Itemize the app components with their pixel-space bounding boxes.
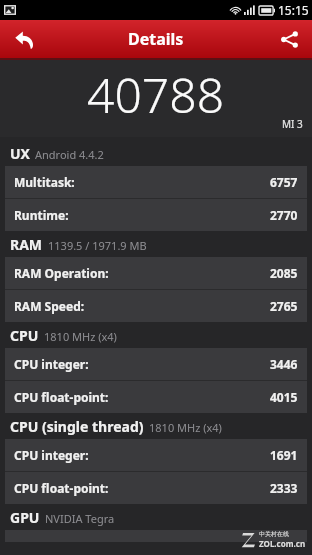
staticText: MI 3 bbox=[282, 117, 303, 131]
staticText: 6757 bbox=[270, 174, 298, 190]
staticText: ZOL.com.cn bbox=[259, 538, 306, 549]
button[interactable]: RAM Operation: bbox=[5, 257, 307, 289]
staticText: 2770 bbox=[270, 207, 298, 223]
staticText: 3446 bbox=[270, 356, 298, 372]
button[interactable]: Runtime: bbox=[5, 199, 307, 231]
staticText: RAM bbox=[10, 235, 43, 254]
staticText: CPU integer: bbox=[14, 447, 89, 463]
staticText: RAM Operation: bbox=[14, 265, 109, 281]
button[interactable]: Back bbox=[0, 20, 48, 58]
staticText: CPU integer: bbox=[14, 356, 89, 372]
staticText: CPU bbox=[10, 326, 39, 345]
button[interactable]: Multitask: bbox=[5, 166, 307, 198]
staticText: 2333 bbox=[270, 480, 298, 496]
staticText: 中关村在线 bbox=[259, 530, 289, 538]
staticText: Runtime: bbox=[14, 207, 69, 223]
button[interactable]: RAM Speed: bbox=[5, 290, 307, 322]
staticText: Details bbox=[128, 28, 184, 50]
staticText: 1810 MHz (x4) bbox=[149, 420, 222, 435]
staticText: UX bbox=[10, 144, 30, 163]
button[interactable]: CPU float-point: bbox=[5, 381, 307, 413]
staticText: CPU (single thread) bbox=[10, 417, 144, 436]
button[interactable]: Share bbox=[266, 20, 312, 58]
button[interactable]: CPU integer: bbox=[5, 439, 307, 471]
button[interactable]: CPU float-point: bbox=[5, 472, 307, 504]
staticText: 2085 bbox=[270, 265, 298, 281]
staticText: 4015 bbox=[270, 389, 298, 405]
staticText: 2765 bbox=[270, 298, 298, 314]
staticText: GPU bbox=[10, 508, 40, 527]
staticText: 1691 bbox=[270, 447, 298, 463]
staticText: Android 4.4.2 bbox=[35, 147, 104, 162]
staticText: 1810 MHz (x4) bbox=[44, 329, 117, 344]
staticText: 15:15 bbox=[278, 2, 309, 18]
staticText: CPU float-point: bbox=[14, 480, 109, 496]
staticText: NVIDIA Tegra bbox=[45, 511, 115, 526]
staticText: 1139.5 / 1971.9 MB bbox=[48, 238, 147, 253]
button[interactable]: CPU integer: bbox=[5, 348, 307, 380]
staticText: CPU float-point: bbox=[14, 389, 109, 405]
staticText: 40788 bbox=[87, 62, 225, 127]
staticText: RAM Speed: bbox=[14, 298, 85, 314]
staticText: Multitask: bbox=[14, 174, 75, 190]
